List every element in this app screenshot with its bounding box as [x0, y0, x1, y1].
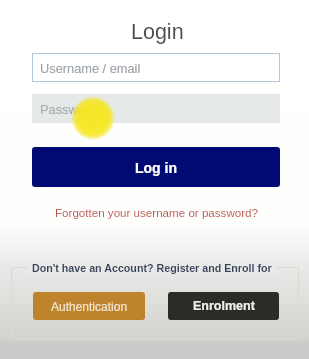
staticText: Username / email [40, 61, 141, 75]
staticText: Authentication [51, 300, 128, 313]
staticText: Password [40, 102, 97, 116]
button[interactable]: Authentication [33, 292, 145, 320]
staticText: Log in [135, 160, 177, 176]
button[interactable]: Password [32, 94, 280, 123]
button[interactable]: Username / email [32, 53, 280, 82]
staticText: Enrolment [193, 299, 255, 313]
button[interactable]: Forgotten your username or password? [51, 204, 262, 221]
button[interactable]: Log in [32, 147, 280, 187]
button[interactable]: Enrolment [168, 292, 279, 320]
staticText: Login [131, 20, 184, 44]
staticText: Don't have an Account? Register and Enro… [32, 262, 272, 274]
